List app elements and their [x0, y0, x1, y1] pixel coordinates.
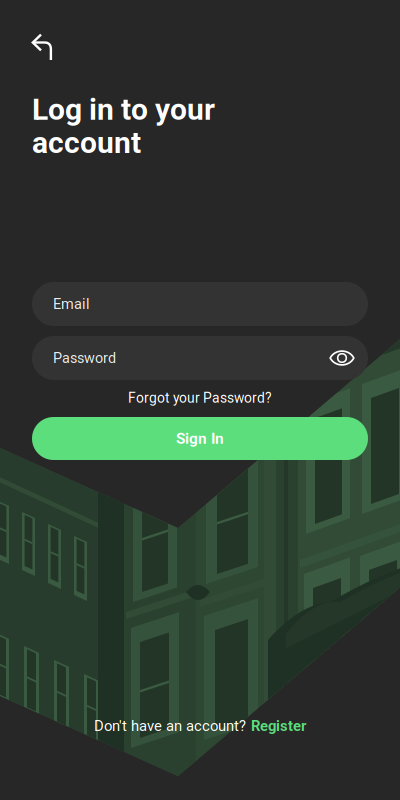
button[interactable]: Forgot your Password?	[32, 387, 368, 409]
staticText: Register	[251, 717, 306, 735]
staticText: Email	[53, 295, 90, 312]
staticText: Log in to your	[32, 92, 215, 127]
staticText: Password	[53, 350, 116, 366]
button[interactable]: Email	[32, 282, 368, 326]
button[interactable]: Back	[20, 24, 64, 68]
button[interactable]: Sign In	[32, 417, 368, 460]
staticText: Forgot your Password?	[128, 390, 272, 406]
staticText: Don't have an account?	[94, 717, 246, 735]
button[interactable]: Register	[251, 717, 306, 735]
staticText: Sign In	[176, 429, 224, 447]
button[interactable]: Password	[32, 336, 368, 380]
staticText: account	[32, 125, 141, 160]
